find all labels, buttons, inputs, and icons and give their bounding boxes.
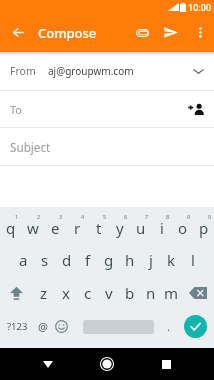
staticText: 1 xyxy=(15,213,19,220)
button[interactable]: 2 xyxy=(22,207,44,243)
staticText: z xyxy=(40,283,48,303)
button[interactable]: m xyxy=(161,276,182,309)
button[interactable]: . xyxy=(154,309,182,344)
button[interactable]: Send xyxy=(156,13,186,52)
button[interactable]: 1 xyxy=(0,207,22,243)
button[interactable]: 0 xyxy=(193,207,214,243)
staticText: b xyxy=(125,283,135,303)
staticText: 6 xyxy=(124,213,128,220)
staticText: e xyxy=(51,218,60,238)
button[interactable]: From xyxy=(0,52,214,90)
button[interactable]: Enter xyxy=(182,309,209,344)
button[interactable]: More options xyxy=(186,13,214,52)
staticText: To xyxy=(10,102,23,117)
staticText: k xyxy=(167,250,176,270)
button[interactable]: 7 xyxy=(130,207,151,243)
staticText: t xyxy=(96,218,102,238)
button[interactable]: z xyxy=(33,276,55,309)
staticText: 4 xyxy=(81,213,85,220)
staticText: Subject xyxy=(10,139,51,155)
button[interactable]: 3 xyxy=(44,207,66,243)
staticText: u xyxy=(136,218,146,238)
staticText: x xyxy=(62,283,70,303)
button[interactable]: n xyxy=(140,276,161,309)
button[interactable]: Backspace xyxy=(182,276,214,309)
staticText: 10:00 xyxy=(188,1,212,13)
staticText: g xyxy=(104,250,114,270)
staticText: 3 xyxy=(59,213,63,220)
staticText: l xyxy=(191,250,195,270)
staticText: o xyxy=(178,218,188,238)
button[interactable]: h xyxy=(119,243,140,276)
staticText: 9 xyxy=(187,213,191,220)
button[interactable]: 4 xyxy=(66,207,88,243)
staticText: p xyxy=(199,218,209,238)
staticText: 2 xyxy=(37,213,41,220)
staticText: Compose xyxy=(38,24,97,42)
staticText: 5 xyxy=(103,213,107,220)
staticText: d xyxy=(62,250,72,270)
staticText: n xyxy=(146,283,156,303)
button[interactable]: c xyxy=(77,276,98,309)
button[interactable]: k xyxy=(161,243,182,276)
button[interactable]: l xyxy=(182,243,203,276)
button[interactable]: Emoji xyxy=(52,309,71,344)
staticText: s xyxy=(41,250,49,270)
button[interactable]: Add recipient xyxy=(186,99,206,119)
button[interactable]: @ xyxy=(34,309,52,344)
staticText: h xyxy=(125,250,135,270)
button[interactable]: 9 xyxy=(172,207,193,243)
button[interactable]: j xyxy=(140,243,161,276)
staticText: i xyxy=(160,218,164,238)
button[interactable]: f xyxy=(77,243,98,276)
button[interactable]: 6 xyxy=(109,207,130,243)
staticText: a xyxy=(19,250,28,270)
staticText: . xyxy=(167,319,170,334)
staticText: c xyxy=(84,283,92,303)
button[interactable]: To xyxy=(0,91,214,127)
staticText: v xyxy=(105,283,113,303)
button[interactable]: Hide keyboard xyxy=(30,348,66,380)
button[interactable]: Back xyxy=(0,13,37,52)
button[interactable]: Attach file xyxy=(128,13,156,52)
staticText: w xyxy=(27,218,39,238)
button[interactable]: ?123 xyxy=(0,309,34,344)
staticText: ?123 xyxy=(7,320,28,333)
staticText: 7 xyxy=(145,213,149,220)
staticText: q xyxy=(6,218,16,238)
button[interactable]: 5 xyxy=(88,207,109,243)
staticText: j xyxy=(149,250,153,270)
button[interactable]: b xyxy=(119,276,140,309)
staticText: 8 xyxy=(166,213,170,220)
button[interactable]: s xyxy=(34,243,56,276)
button[interactable]: Home xyxy=(89,348,125,380)
button[interactable]: x xyxy=(55,276,77,309)
button[interactable]: v xyxy=(98,276,119,309)
staticText: aj@groupwm.com xyxy=(48,64,134,78)
staticText: 0 xyxy=(208,213,212,220)
button[interactable]: Shift xyxy=(0,276,33,309)
button[interactable]: 8 xyxy=(151,207,172,243)
button[interactable]: d xyxy=(56,243,77,276)
staticText: y xyxy=(116,218,124,238)
staticText: r xyxy=(74,218,81,238)
button[interactable]: Choose account xyxy=(190,63,206,79)
staticText: m xyxy=(164,283,179,303)
button[interactable]: g xyxy=(98,243,119,276)
staticText: @ xyxy=(38,319,48,334)
staticText: From xyxy=(10,64,36,78)
staticText: f xyxy=(85,250,91,270)
button[interactable]: Recent apps xyxy=(148,348,184,380)
button[interactable]: Subject xyxy=(0,128,214,165)
button[interactable]: a xyxy=(12,243,34,276)
